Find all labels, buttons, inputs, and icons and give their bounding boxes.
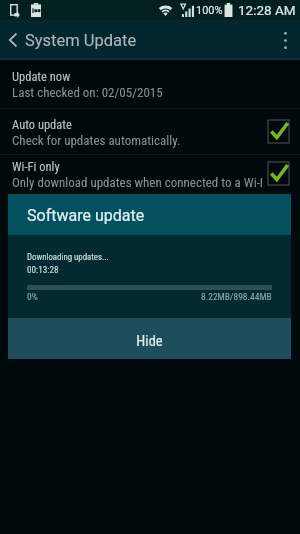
button[interactable]: Auto update [0,109,300,154]
button[interactable]: Toggle Auto update [268,120,289,143]
button[interactable]: Update now [0,60,300,108]
staticText: Check for updates automatically. [12,133,262,148]
button[interactable]: Wi-Fi only [0,155,300,203]
staticText: Wi-Fi only [12,159,60,174]
staticText: 00:13:28 [27,264,59,275]
staticText: 8.22MB/898.44MB [201,291,272,302]
staticText: 100% [196,4,223,17]
staticText: System Update [25,31,137,50]
staticText: Last checked on: 02/05/2015 [12,85,262,100]
staticText: Only download updates when connected to … [12,175,262,190]
staticText: Auto update [12,117,72,132]
staticText: 12:28 AM [238,2,296,18]
staticText: Update now [12,69,71,84]
staticText: Software update [27,206,145,225]
button[interactable]: Hide [8,318,291,359]
staticText: Downloading updates... [27,252,109,262]
staticText: 0% [27,291,38,302]
staticText: Hide [136,333,163,350]
button[interactable]: Toggle Wi-Fi only [268,162,289,185]
button[interactable]: More options [270,20,300,60]
button[interactable]: Back [0,20,25,60]
